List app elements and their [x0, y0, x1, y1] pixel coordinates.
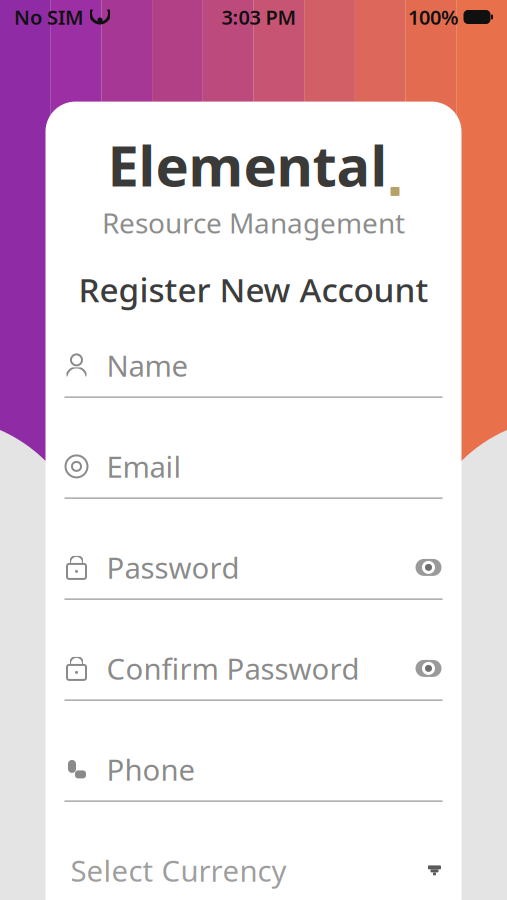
button[interactable]: Show password [414, 555, 442, 579]
staticText: Password [106, 548, 239, 587]
staticText: 100% [408, 4, 459, 30]
staticText: Resource Management [102, 204, 405, 241]
staticText: Select Currency [70, 851, 286, 890]
button[interactable]: Confirm Password [45, 637, 461, 738]
button[interactable]: Show confirm password [414, 656, 442, 680]
button[interactable]: Email [45, 435, 461, 536]
staticText: Phone [106, 750, 195, 789]
staticText: Elemental [107, 128, 387, 202]
button[interactable]: Password [45, 536, 461, 637]
button[interactable]: Select Currency [45, 839, 461, 900]
staticText: Confirm Password [106, 649, 359, 688]
staticText: Email [106, 447, 181, 486]
staticText: 3:03 PM [221, 4, 296, 30]
button[interactable]: Phone [45, 738, 461, 839]
button[interactable]: Name [45, 334, 461, 435]
staticText: Name [106, 346, 188, 385]
staticText: Register New Account [78, 267, 428, 311]
staticText: No SIM [14, 4, 84, 30]
